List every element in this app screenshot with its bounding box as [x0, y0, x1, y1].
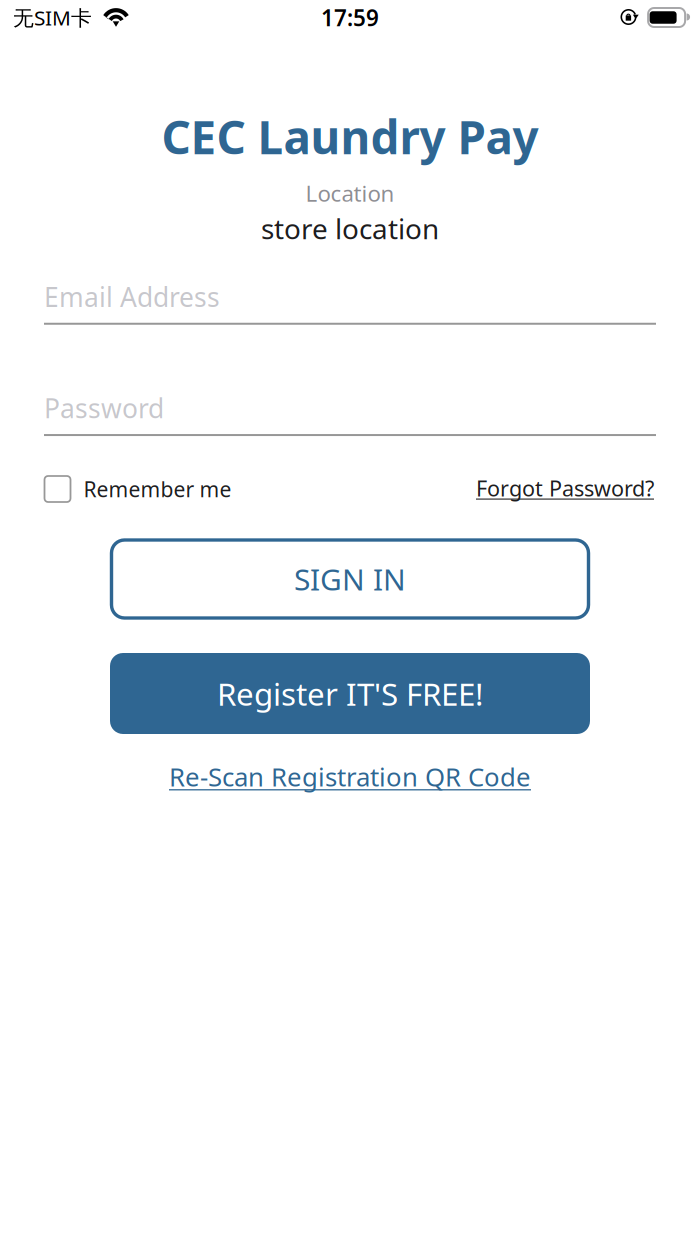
button[interactable]: Re-Scan Registration QR Code — [169, 759, 531, 794]
button[interactable]: Register IT'S FREE! — [110, 653, 590, 734]
staticText: Location — [305, 178, 394, 208]
button[interactable]: SIGN IN — [111, 540, 588, 618]
staticText: Re-Scan Registration QR Code — [169, 759, 531, 794]
button[interactable]: Password — [44, 391, 656, 436]
staticText: Register IT'S FREE! — [217, 672, 483, 715]
button[interactable]: Forgot Password? — [476, 473, 654, 503]
staticText: 无SIM卡 — [13, 3, 92, 32]
staticText: CEC Laundry Pay — [161, 105, 538, 168]
staticText: 17:59 — [321, 2, 379, 33]
staticText: SIGN IN — [294, 559, 406, 599]
staticText: Forgot Password? — [476, 473, 654, 503]
staticText: Remember me — [83, 475, 231, 503]
button[interactable]: Remember me — [44, 475, 231, 503]
button[interactable]: Email Address — [44, 279, 656, 325]
staticText: Email Address — [44, 279, 220, 315]
staticText: Password — [44, 390, 164, 426]
staticText: store location — [261, 209, 439, 247]
